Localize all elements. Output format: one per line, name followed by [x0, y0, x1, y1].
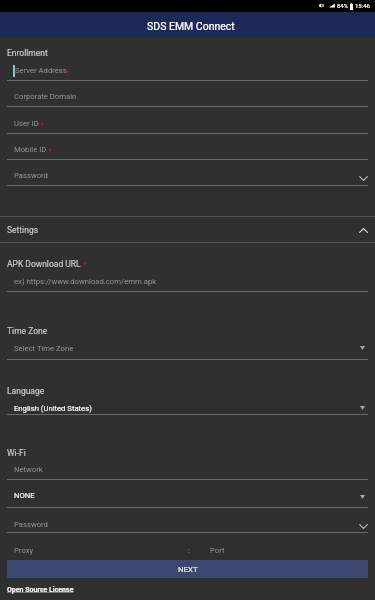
staticText: Select Time Zone: [14, 344, 74, 353]
staticText: User ID: [14, 119, 39, 128]
staticText: Time Zone: [7, 326, 48, 336]
button[interactable]: [0, 82, 375, 106]
staticText: Wi-Fi: [7, 448, 26, 458]
staticText: 15:46: [355, 2, 370, 9]
button[interactable]: [0, 135, 375, 159]
staticText: SDS EMM Connect: [147, 20, 235, 32]
staticText: Enrollment: [7, 48, 48, 58]
button[interactable]: NEXT: [7, 560, 368, 578]
staticText: *: [66, 69, 70, 79]
button[interactable]: [0, 109, 375, 133]
staticText: Mobile ID: [14, 145, 47, 154]
other: Muted: [319, 3, 324, 8]
staticText: Corporate Domain: [14, 92, 77, 101]
staticText: Settings: [7, 225, 39, 235]
staticText: NONE: [14, 491, 35, 500]
staticText: 84%: [337, 2, 349, 9]
staticText: ex) https://www.download.com/emm.apk: [14, 277, 157, 286]
staticText: NEXT: [178, 565, 198, 574]
staticText: Open Source License: [7, 586, 74, 594]
staticText: Network: [14, 465, 43, 474]
staticText: *: [40, 121, 44, 131]
staticText: Port: [210, 546, 225, 555]
button[interactable]: [0, 216, 375, 242]
button[interactable]: [0, 161, 375, 185]
other: Battery: [350, 3, 353, 10]
button[interactable]: Open Source License: [7, 586, 74, 594]
staticText: APK Download URL: [7, 259, 81, 269]
button[interactable]: [0, 12, 375, 37]
other: Signal strength: [329, 3, 335, 8]
staticText: Password: [14, 171, 48, 180]
staticText: Language: [7, 386, 45, 396]
button[interactable]: [0, 56, 375, 80]
staticText: :: [188, 546, 190, 555]
staticText: English (United States): [14, 404, 92, 413]
staticText: *: [48, 147, 52, 157]
staticText: Proxy: [14, 546, 34, 555]
staticText: Server Address: [15, 66, 67, 75]
staticText: *: [83, 261, 87, 271]
staticText: Password: [14, 520, 48, 529]
